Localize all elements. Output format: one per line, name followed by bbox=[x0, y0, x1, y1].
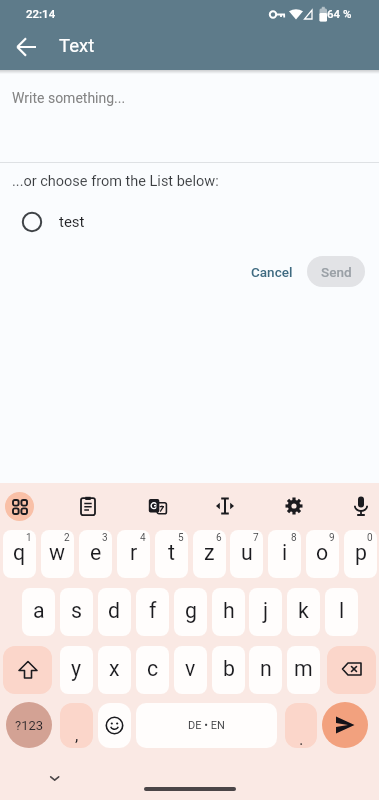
button[interactable] bbox=[3, 530, 36, 578]
staticText: m bbox=[294, 656, 313, 681]
button[interactable] bbox=[9, 29, 45, 65]
button[interactable] bbox=[3, 646, 52, 694]
button[interactable]: Send bbox=[307, 256, 365, 287]
button[interactable] bbox=[5, 492, 34, 521]
staticText: s bbox=[71, 598, 82, 623]
button[interactable]: s bbox=[60, 588, 93, 636]
staticText: u bbox=[241, 540, 253, 565]
staticText: p bbox=[355, 540, 367, 565]
button[interactable] bbox=[41, 530, 74, 578]
button[interactable] bbox=[210, 491, 240, 521]
button[interactable]: c bbox=[136, 646, 169, 694]
button[interactable]: n bbox=[249, 646, 282, 694]
staticText: x bbox=[109, 656, 120, 681]
staticText: g bbox=[185, 598, 197, 623]
button[interactable]: k bbox=[287, 588, 320, 636]
button[interactable] bbox=[327, 646, 376, 694]
button[interactable]: f bbox=[136, 588, 169, 636]
button[interactable] bbox=[155, 530, 188, 578]
button[interactable]: . bbox=[285, 703, 317, 748]
staticText: Text bbox=[59, 35, 95, 57]
button[interactable]: d bbox=[98, 588, 131, 636]
button[interactable] bbox=[268, 530, 301, 578]
button[interactable] bbox=[40, 766, 70, 792]
staticText: test bbox=[59, 213, 85, 231]
staticText: 5 bbox=[178, 532, 184, 544]
staticText: 7 bbox=[253, 532, 259, 544]
button[interactable]: j bbox=[249, 588, 282, 636]
button[interactable]: h bbox=[212, 588, 245, 636]
staticText: 6 bbox=[216, 532, 222, 544]
button[interactable]: ?123 bbox=[6, 702, 52, 748]
staticText: 3 bbox=[102, 532, 108, 544]
staticText: f bbox=[149, 598, 157, 623]
button[interactable]: x bbox=[98, 646, 131, 694]
button[interactable] bbox=[346, 491, 376, 521]
button[interactable]: DE • EN bbox=[136, 703, 277, 748]
button[interactable] bbox=[0, 70, 379, 162]
staticText: 4 bbox=[140, 532, 146, 544]
button[interactable]: a bbox=[22, 588, 55, 636]
staticText: 0 bbox=[367, 532, 373, 544]
staticText: Write something... bbox=[12, 90, 126, 106]
button[interactable]: m bbox=[287, 646, 320, 694]
staticText: r bbox=[130, 540, 138, 565]
staticText: ...or choose from the List below: bbox=[12, 173, 219, 190]
staticText: v bbox=[185, 656, 196, 681]
staticText: h bbox=[223, 598, 235, 623]
staticText: 9 bbox=[329, 532, 335, 544]
staticText: d bbox=[108, 598, 121, 623]
staticText: 1 bbox=[26, 532, 32, 544]
staticText: Send bbox=[321, 264, 352, 280]
button[interactable]: l bbox=[325, 588, 358, 636]
button[interactable] bbox=[322, 702, 368, 748]
staticText: t bbox=[168, 540, 175, 565]
staticText: a bbox=[33, 598, 45, 623]
staticText: 2 bbox=[64, 532, 70, 544]
staticText: 8 bbox=[291, 532, 297, 544]
staticText: l bbox=[339, 598, 345, 623]
button[interactable] bbox=[279, 491, 309, 521]
staticText: y bbox=[71, 656, 82, 681]
button[interactable] bbox=[193, 530, 226, 578]
staticText: Cancel bbox=[251, 264, 293, 280]
staticText: DE • EN bbox=[188, 719, 225, 732]
button[interactable]: b bbox=[212, 646, 245, 694]
staticText: 22:14 bbox=[26, 7, 56, 20]
staticText: w bbox=[49, 540, 66, 565]
staticText: z bbox=[204, 540, 215, 565]
staticText: c bbox=[147, 656, 159, 681]
button[interactable]: y bbox=[60, 646, 93, 694]
button[interactable] bbox=[230, 530, 263, 578]
staticText: q bbox=[13, 540, 26, 565]
staticText: ?123 bbox=[15, 718, 44, 733]
button[interactable]: , bbox=[60, 703, 93, 748]
button[interactable] bbox=[306, 530, 339, 578]
button[interactable] bbox=[344, 530, 377, 578]
button[interactable]: g bbox=[174, 588, 207, 636]
staticText: b bbox=[223, 656, 235, 681]
staticText: k bbox=[298, 598, 309, 623]
staticText: o bbox=[316, 540, 329, 565]
staticText: 64 % bbox=[327, 7, 352, 20]
staticText: n bbox=[260, 656, 272, 681]
staticText: . bbox=[299, 729, 304, 748]
button[interactable]: v bbox=[174, 646, 207, 694]
button[interactable] bbox=[79, 530, 112, 578]
staticText: e bbox=[90, 540, 102, 565]
button[interactable]: Cancel bbox=[245, 255, 298, 288]
staticText: j bbox=[263, 598, 269, 623]
button[interactable] bbox=[98, 703, 131, 748]
button[interactable] bbox=[142, 491, 172, 521]
button[interactable] bbox=[73, 491, 103, 521]
staticText: i bbox=[282, 540, 288, 565]
button[interactable]: test bbox=[10, 202, 170, 242]
staticText: , bbox=[75, 725, 79, 745]
button[interactable] bbox=[117, 530, 150, 578]
